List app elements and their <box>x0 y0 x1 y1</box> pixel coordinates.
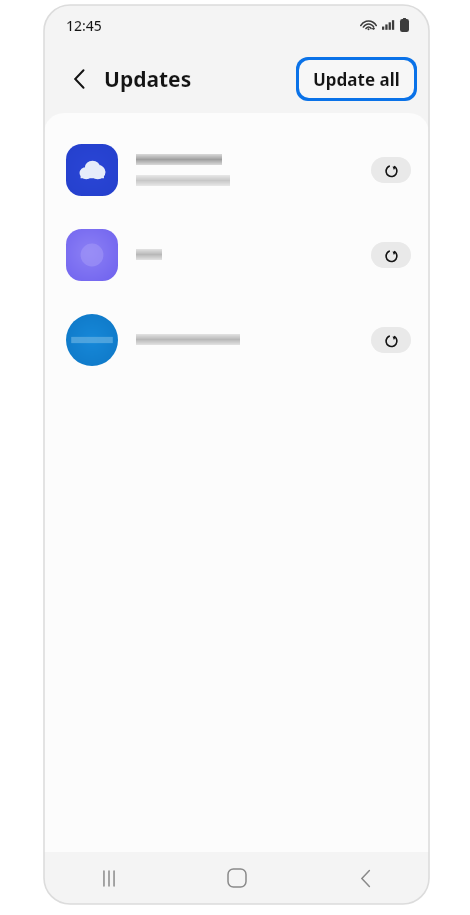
staticText: Update all <box>313 68 400 91</box>
button[interactable]: Back <box>301 852 429 904</box>
staticText: Updates <box>104 65 192 94</box>
button[interactable]: Back <box>60 59 100 99</box>
staticText: 12:45 <box>66 16 102 35</box>
button[interactable]: Update <box>44 212 429 297</box>
button[interactable]: Recents <box>44 852 173 904</box>
button[interactable]: Update <box>371 327 411 353</box>
button[interactable]: Home <box>173 852 301 904</box>
button[interactable]: Update <box>44 297 429 382</box>
button[interactable]: Update <box>371 157 411 183</box>
button[interactable]: Update <box>371 242 411 268</box>
button[interactable]: Update <box>44 127 429 212</box>
button[interactable]: Update all <box>299 60 414 98</box>
